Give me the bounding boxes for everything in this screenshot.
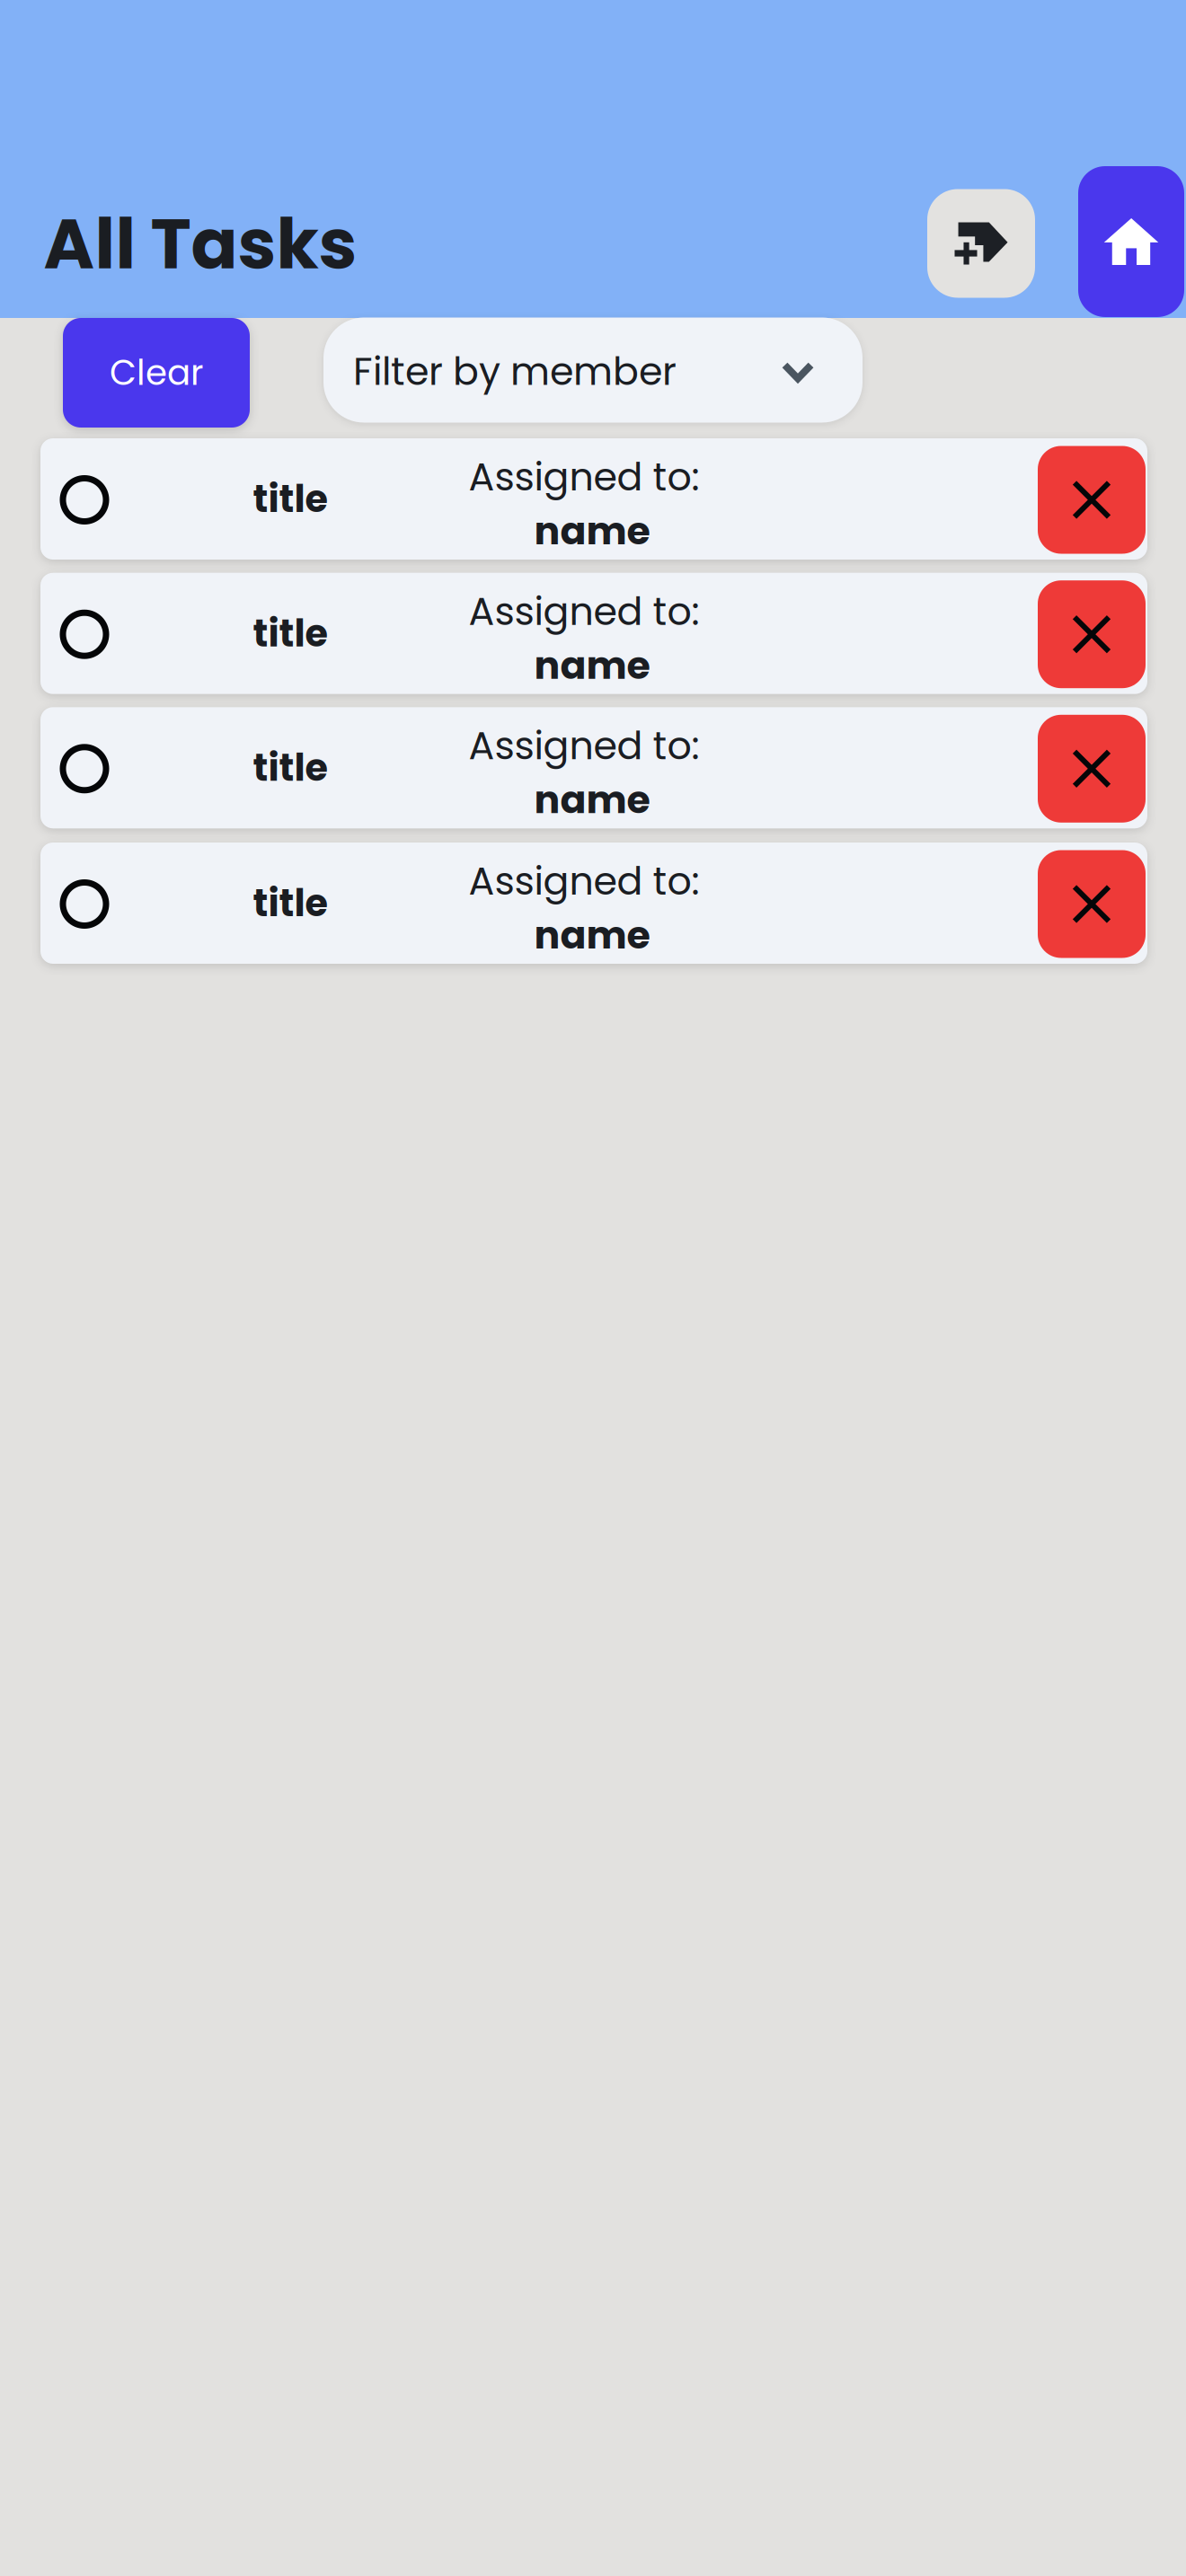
button[interactable]: Mark task complete	[43, 843, 126, 965]
staticText: Filter by member	[353, 345, 677, 398]
staticText: name	[534, 908, 650, 962]
staticText: Assigned to:	[469, 585, 699, 638]
staticText: Clear	[110, 348, 203, 397]
staticText: All Tasks	[44, 196, 357, 292]
staticText: title	[253, 742, 327, 794]
button[interactable]: Add task	[927, 189, 1035, 298]
button[interactable]: Mark task complete	[43, 574, 126, 695]
button[interactable]: Home	[1078, 166, 1184, 317]
staticText: name	[534, 504, 650, 558]
button[interactable]: Delete task	[1038, 446, 1146, 554]
staticText: Assigned to:	[469, 450, 699, 504]
staticText: name	[534, 638, 650, 692]
button[interactable]: Mark task complete	[43, 708, 126, 829]
button[interactable]: Delete task	[1038, 850, 1146, 958]
staticText: title	[253, 877, 327, 929]
button[interactable]: Clear	[63, 318, 250, 428]
staticText: title	[253, 607, 327, 659]
staticText: name	[534, 773, 650, 826]
button[interactable]: Filter by member	[323, 318, 863, 423]
staticText: Assigned to:	[469, 854, 699, 908]
staticText: title	[253, 473, 327, 525]
button[interactable]: Mark task complete	[43, 439, 126, 560]
staticText: Assigned to:	[469, 719, 699, 773]
button[interactable]: Delete task	[1038, 715, 1146, 823]
button[interactable]: Delete task	[1038, 580, 1146, 688]
